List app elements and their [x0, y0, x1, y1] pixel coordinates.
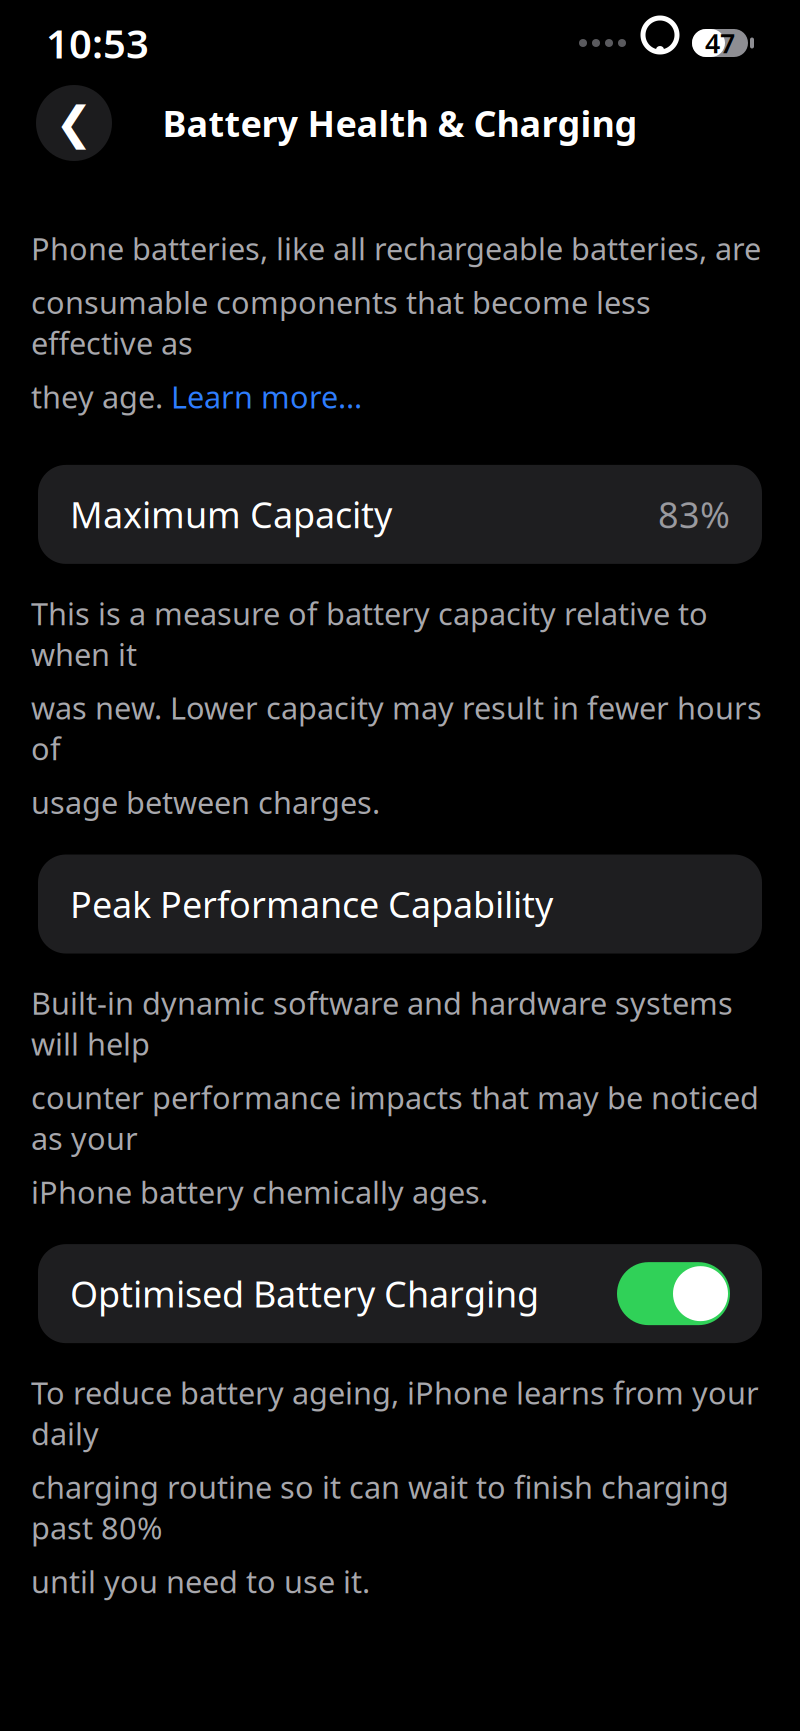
staticText: This is a measure of battery capacity re… [31, 593, 708, 674]
staticText: iPhone battery chemically ages. [31, 1171, 488, 1212]
staticText: 47 [705, 25, 735, 61]
staticText: 10:53 [46, 16, 149, 69]
staticText: Peak Performance Capability [70, 880, 553, 928]
staticText: Optimised Battery Charging [70, 1270, 539, 1317]
button[interactable]: Learn more… [171, 376, 362, 417]
staticText: they age. [31, 376, 171, 417]
button[interactable]: Back [36, 85, 112, 161]
staticText: ❮ [55, 97, 93, 149]
staticText: Built-in dynamic software and hardware s… [31, 982, 733, 1064]
staticText: was new. Lower capacity may result in fe… [31, 687, 762, 769]
staticText: consumable components that become less e… [31, 282, 651, 363]
staticText: Maximum Capacity [70, 490, 392, 538]
staticText: counter performance impacts that may be … [31, 1077, 759, 1158]
staticText: 83% [658, 490, 730, 538]
staticText: usage between charges. [31, 782, 380, 822]
button[interactable]: Maximum Capacity [38, 465, 762, 564]
staticText: To reduce battery ageing, iPhone learns … [31, 1372, 759, 1453]
button[interactable]: Optimised Battery Charging [38, 1244, 762, 1343]
staticText: Learn more… [171, 376, 362, 417]
staticText: Phone batteries, like all rechargeable b… [31, 228, 761, 269]
button[interactable]: Peak Performance Capability [38, 854, 762, 953]
staticText: Battery Health & Charging [162, 99, 637, 147]
staticText: charging routine so it can wait to finis… [31, 1467, 729, 1548]
staticText: until you need to use it. [31, 1561, 370, 1602]
